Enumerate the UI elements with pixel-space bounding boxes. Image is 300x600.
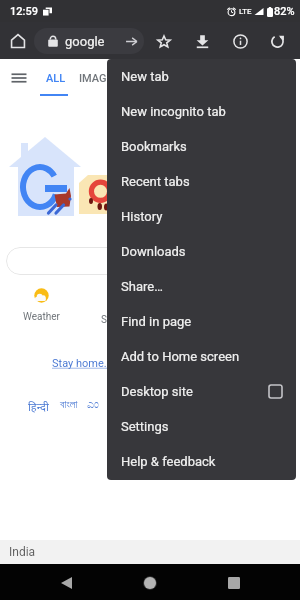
- button[interactable]: Stay home. S: [52, 357, 116, 370]
- button[interactable]: Download: [190, 29, 214, 53]
- button[interactable]: Bookmarks: [107, 129, 296, 164]
- staticText: Desktop site: [121, 384, 193, 399]
- staticText: google: [65, 34, 105, 49]
- button[interactable]: google: [34, 28, 144, 54]
- staticText: IMAGES: [79, 72, 120, 85]
- staticText: New incognito tab: [121, 104, 226, 119]
- button[interactable]: Home: [5, 29, 29, 53]
- staticText: Bookmarks: [121, 139, 187, 154]
- staticText: New tab: [121, 69, 169, 84]
- button[interactable]: বাংলা: [60, 399, 78, 410]
- button[interactable]: Back: [54, 570, 79, 595]
- button[interactable]: ಎಂ: [87, 399, 99, 410]
- button[interactable]: [6, 247, 126, 275]
- button[interactable]: Add to Home screen: [107, 339, 296, 374]
- button[interactable]: New incognito tab: [107, 94, 296, 129]
- staticText: Share…: [121, 279, 163, 294]
- staticText: Recent tabs: [121, 174, 190, 189]
- button[interactable]: Downloads: [107, 234, 296, 269]
- button[interactable]: Weather: [20, 288, 62, 323]
- button[interactable]: Recents: [221, 570, 246, 595]
- button[interactable]: हिन्दी: [28, 399, 49, 414]
- button[interactable]: New tab: [107, 59, 296, 94]
- staticText: ALL: [46, 72, 66, 85]
- staticText: Add to Home screen: [121, 349, 240, 364]
- staticText: 12:59: [10, 5, 38, 18]
- button[interactable]: Recent tabs: [107, 164, 296, 199]
- button[interactable]: Menu: [8, 67, 30, 89]
- button[interactable]: Reload: [265, 29, 289, 53]
- staticText: Weather: [23, 311, 60, 323]
- button[interactable]: Help & feedback: [107, 444, 296, 479]
- button[interactable]: Bookmark: [152, 29, 176, 53]
- staticText: LTE: [239, 7, 252, 16]
- staticText: Find in page: [121, 314, 192, 329]
- staticText: Downloads: [121, 244, 186, 259]
- button[interactable]: History: [107, 199, 296, 234]
- staticText: India: [9, 545, 36, 559]
- button[interactable]: Home: [137, 570, 162, 595]
- button[interactable]: Find in page: [107, 304, 296, 339]
- button[interactable]: Settings: [107, 409, 296, 444]
- button[interactable]: Share…: [107, 269, 296, 304]
- staticText: History: [121, 209, 163, 224]
- button[interactable]: Desktop site: [107, 374, 296, 409]
- staticText: 82%: [274, 5, 295, 18]
- staticText: Help & feedback: [121, 454, 216, 469]
- button[interactable]: Page info: [228, 29, 252, 53]
- staticText: Settings: [121, 419, 169, 434]
- staticText: S: [101, 314, 107, 326]
